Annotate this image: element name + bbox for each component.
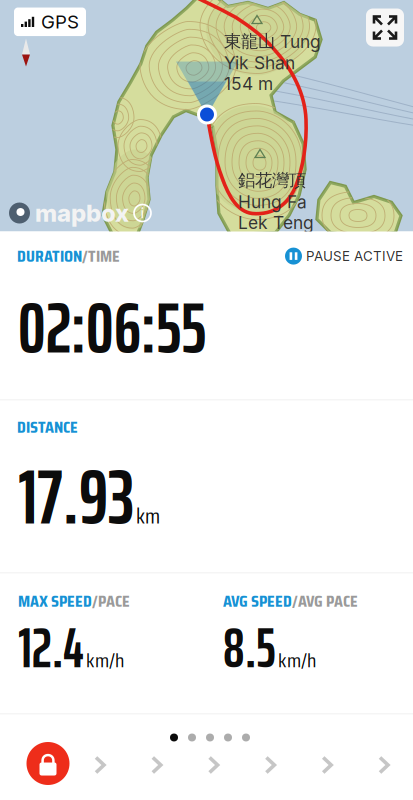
- staticText: Hung Fa: [238, 191, 307, 212]
- staticText: /AVG PACE: [292, 588, 358, 614]
- staticText: i: [140, 204, 144, 222]
- button[interactable]: Lock screen: [20, 735, 76, 791]
- staticText: MAX SPEED: [18, 588, 92, 614]
- staticText: 12.4: [18, 604, 84, 692]
- staticText: 139 m: [238, 233, 287, 254]
- staticText: 8.5: [223, 604, 276, 692]
- staticText: GPS: [41, 10, 79, 33]
- staticText: 02:06:55: [18, 271, 206, 384]
- staticText: Yik Shan: [224, 52, 295, 73]
- staticText: PAUSE ACTIVE: [306, 248, 403, 264]
- staticText: 鋁花灣頂: [238, 169, 306, 191]
- staticText: AVG SPEED: [223, 588, 292, 614]
- button[interactable]: Expand map: [366, 8, 404, 46]
- staticText: DISTANCE: [17, 414, 78, 440]
- staticText: km: [136, 499, 160, 533]
- staticText: 17.93: [18, 436, 134, 557]
- staticText: Lek Teng: [238, 212, 314, 233]
- staticText: mapbox: [35, 198, 129, 227]
- staticText: /TIME: [82, 243, 120, 269]
- staticText: 東龍山 Tung: [224, 30, 321, 52]
- staticText: /PACE: [92, 588, 130, 614]
- staticText: km/h: [86, 644, 124, 676]
- staticText: DURATION: [17, 243, 82, 269]
- staticText: km/h: [278, 644, 316, 676]
- staticText: 154 m: [224, 73, 273, 94]
- button[interactable]: PAUSE ACTIVE: [285, 248, 403, 265]
